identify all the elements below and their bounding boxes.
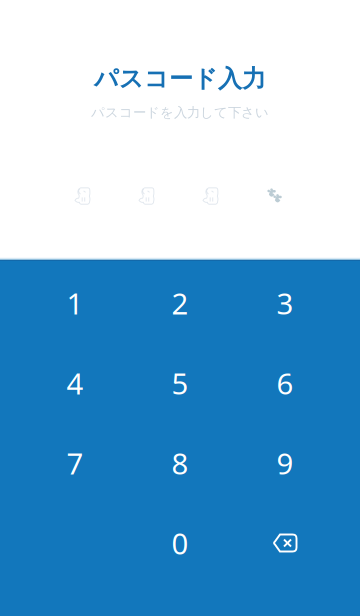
button[interactable]: 7 <box>22 421 127 501</box>
button[interactable]: 4 <box>22 341 127 421</box>
staticText: 8 <box>171 443 188 482</box>
staticText: 3 <box>276 283 293 322</box>
staticText: 4 <box>66 363 83 402</box>
button[interactable]: 5 <box>127 341 232 421</box>
staticText: 9 <box>276 443 293 482</box>
button[interactable]: 6 <box>232 341 337 421</box>
button[interactable]: 3 <box>232 261 337 341</box>
staticText: 6 <box>276 363 293 402</box>
button[interactable]: Delete <box>232 501 337 581</box>
button[interactable]: 2 <box>127 261 232 341</box>
button[interactable]: 9 <box>232 421 337 501</box>
button[interactable]: 8 <box>127 421 232 501</box>
staticText: 7 <box>66 443 83 482</box>
staticText: 0 <box>171 523 188 562</box>
staticText: パスコードを入力して下さい <box>91 104 269 121</box>
staticText: 1 <box>66 283 83 322</box>
staticText: 5 <box>171 363 188 402</box>
staticText: パスコード入力 <box>94 64 266 93</box>
staticText: 2 <box>171 283 188 322</box>
button[interactable]: 0 <box>127 501 232 581</box>
button[interactable]: 1 <box>22 261 127 341</box>
